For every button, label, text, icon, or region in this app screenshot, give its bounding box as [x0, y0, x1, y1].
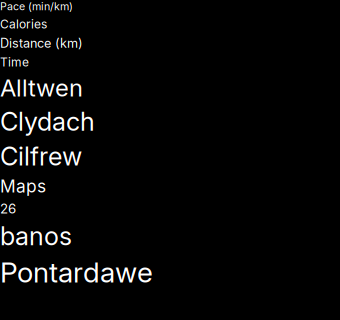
staticText: Cilfrew [0, 141, 82, 172]
staticText: Time [0, 55, 29, 69]
staticText: banos [0, 221, 72, 251]
staticText: Distance (km) [0, 35, 83, 51]
staticText: Maps [0, 176, 46, 197]
staticText: Pontardawe [0, 255, 153, 289]
staticText: Alltwen [0, 73, 83, 102]
staticText: 26 [0, 201, 16, 217]
staticText: Calories [0, 17, 47, 31]
staticText: Pace (min/km) [0, 0, 73, 13]
staticText: Clydach [0, 106, 95, 137]
